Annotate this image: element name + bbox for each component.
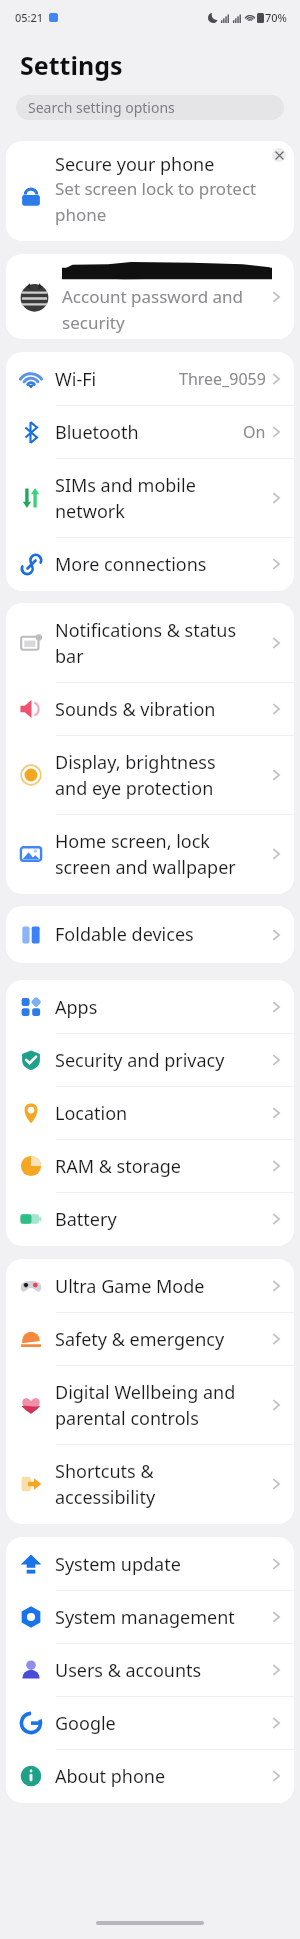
staticText: Secure your phone <box>55 152 215 177</box>
button[interactable]: Secure your phone <box>6 141 294 241</box>
button[interactable]: Users & accounts <box>6 1644 294 1696</box>
staticText: Foldable devices <box>55 922 249 947</box>
staticText: Shortcuts & accessibility <box>55 1459 249 1510</box>
staticText: Google <box>55 1711 249 1736</box>
staticText: Security and privacy <box>55 1048 249 1073</box>
staticText: Account password and security <box>62 285 272 334</box>
button[interactable]: System management <box>6 1591 294 1643</box>
staticText: Apps <box>55 995 249 1020</box>
button[interactable]: Search setting options <box>16 95 284 120</box>
button[interactable]: Account password and security <box>6 254 294 339</box>
staticText: Users & accounts <box>55 1658 249 1683</box>
button[interactable]: More connections <box>6 538 294 590</box>
staticText: Safety & emergency <box>55 1327 249 1352</box>
staticText: Search setting options <box>28 98 175 117</box>
staticText: RAM & storage <box>55 1154 249 1179</box>
button[interactable]: Wi-Fi <box>6 353 294 405</box>
staticText: Location <box>55 1101 249 1126</box>
staticText: About phone <box>55 1764 249 1789</box>
button[interactable]: Ultra Game Mode <box>6 1260 294 1312</box>
button[interactable]: About phone <box>6 1750 294 1802</box>
button[interactable]: Safety & emergency <box>6 1313 294 1365</box>
button[interactable]: SIMs and mobile network <box>6 459 294 537</box>
staticText: 70% <box>265 10 287 25</box>
button[interactable]: Dismiss <box>272 148 286 162</box>
staticText: 05:21 <box>15 10 44 25</box>
button[interactable]: Bluetooth <box>6 406 294 458</box>
staticText: System management <box>55 1605 249 1630</box>
button[interactable]: Security and privacy <box>6 1034 294 1086</box>
button[interactable]: Location <box>6 1087 294 1139</box>
staticText: Wi-Fi <box>55 367 156 392</box>
button[interactable]: Battery <box>6 1193 294 1245</box>
button[interactable]: Google <box>6 1697 294 1749</box>
button[interactable]: Sounds & vibration <box>6 683 294 735</box>
staticText: Bluetooth <box>55 420 220 445</box>
button[interactable]: System update <box>6 1538 294 1590</box>
button[interactable]: Display, brightness and eye protection <box>6 736 294 814</box>
staticText: Set screen lock to protect phone <box>55 177 284 226</box>
staticText: Settings <box>20 48 123 82</box>
button[interactable]: Home screen, lock screen and wallpaper <box>6 815 294 893</box>
staticText: SIMs and mobile network <box>55 473 249 524</box>
staticText: On <box>243 421 266 443</box>
staticText: Ultra Game Mode <box>55 1274 249 1299</box>
staticText: Digital Wellbeing and parental controls <box>55 1380 249 1431</box>
staticText: Notifications & status bar <box>55 618 249 669</box>
staticText: Home screen, lock screen and wallpaper <box>55 829 249 880</box>
staticText: More connections <box>55 552 249 577</box>
staticText: Display, brightness and eye protection <box>55 750 249 801</box>
staticText: System update <box>55 1552 249 1577</box>
button[interactable]: Digital Wellbeing and parental controls <box>6 1366 294 1444</box>
staticText: Battery <box>55 1207 249 1232</box>
button[interactable]: Notifications & status bar <box>6 604 294 682</box>
button[interactable]: Foldable devices <box>6 907 294 962</box>
button[interactable]: Shortcuts & accessibility <box>6 1445 294 1523</box>
staticText: Three_9059 <box>179 368 266 390</box>
staticText: Sounds & vibration <box>55 697 249 722</box>
button[interactable]: RAM & storage <box>6 1140 294 1192</box>
button[interactable]: Apps <box>6 981 294 1033</box>
